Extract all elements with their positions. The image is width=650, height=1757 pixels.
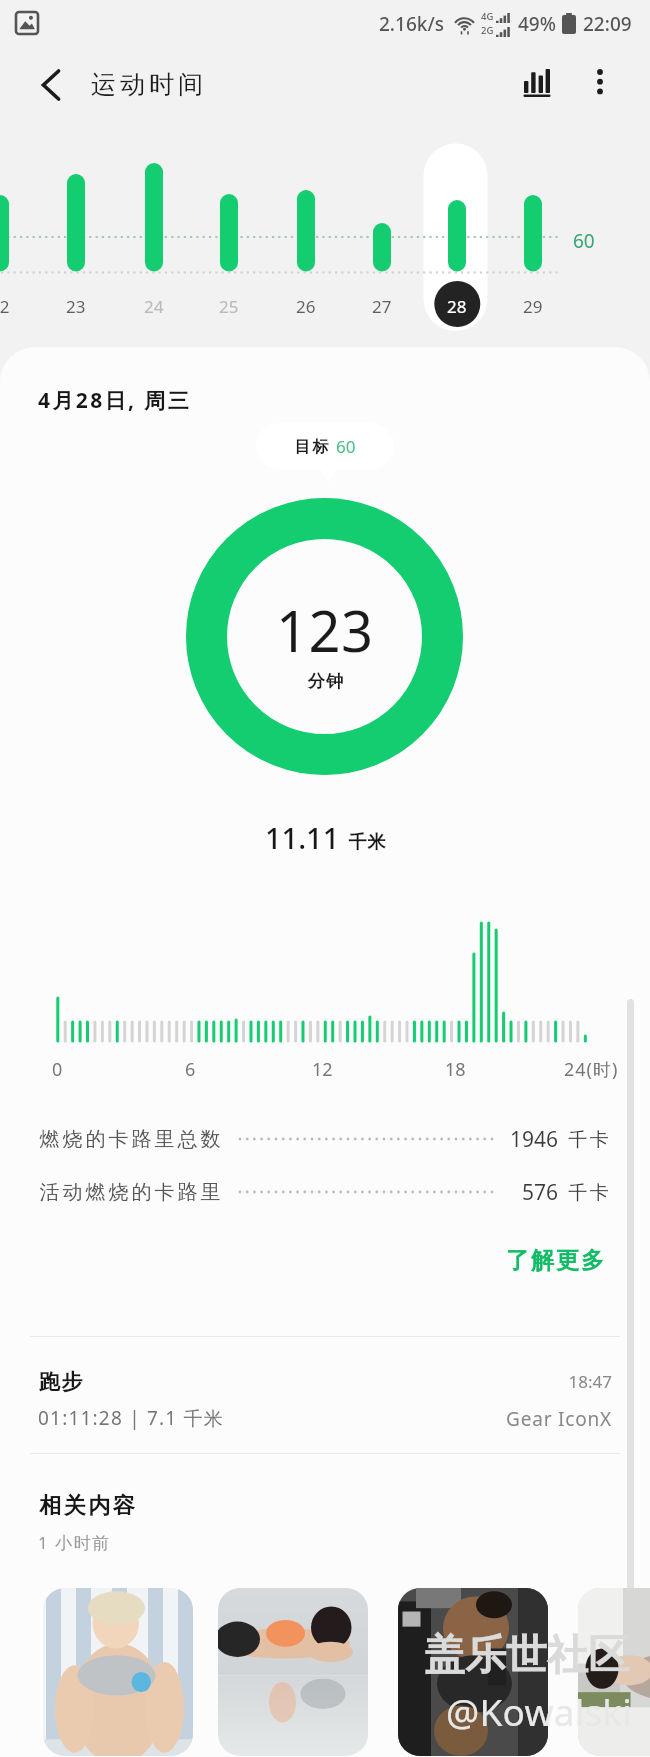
staticText: 千卡 bbox=[567, 1181, 610, 1205]
staticText: 01:11:28 | 7.1 千米 bbox=[38, 1405, 224, 1431]
staticText: 49% bbox=[518, 11, 556, 37]
staticText: 1946 bbox=[510, 1125, 559, 1154]
staticText: 燃烧的卡路里总数 bbox=[38, 1127, 222, 1152]
staticText: 576 bbox=[522, 1178, 559, 1207]
staticText: 目标 bbox=[294, 437, 329, 457]
staticText: 12 bbox=[312, 1057, 333, 1082]
button[interactable]: Statistics chart bbox=[510, 55, 565, 110]
button[interactable]: Back bbox=[24, 58, 78, 112]
button[interactable]: 了解更多 bbox=[489, 1234, 621, 1287]
staticText: 23 bbox=[66, 295, 86, 318]
staticText: 2.16k/s bbox=[379, 11, 444, 37]
staticText: 60 bbox=[336, 435, 356, 458]
staticText: 4G bbox=[481, 10, 494, 23]
staticText: 11.11 bbox=[265, 818, 340, 857]
staticText: 25 bbox=[219, 295, 239, 318]
staticText: 18 bbox=[445, 1057, 466, 1082]
staticText: 2G bbox=[481, 24, 494, 37]
button[interactable]: Related article image bbox=[578, 1588, 650, 1756]
staticText: @Kowalski bbox=[446, 1686, 633, 1736]
staticText: 24(时) bbox=[564, 1057, 619, 1082]
button[interactable]: More options bbox=[572, 55, 627, 110]
button[interactable]: 目标 bbox=[256, 423, 394, 469]
staticText: 60 bbox=[573, 228, 595, 254]
staticText: 活动燃烧的卡路里 bbox=[38, 1180, 222, 1205]
staticText: 6 bbox=[185, 1057, 196, 1082]
staticText: 千米 bbox=[348, 831, 386, 854]
staticText: 27 bbox=[372, 295, 392, 318]
staticText: 运动时间 bbox=[89, 69, 205, 100]
staticText: 了解更多 bbox=[505, 1246, 605, 1275]
button[interactable]: Related article image bbox=[43, 1588, 193, 1756]
staticText: 相关内容 bbox=[38, 1492, 136, 1520]
staticText: 跑步 bbox=[38, 1369, 83, 1395]
staticText: 29 bbox=[523, 295, 543, 318]
staticText: 盖乐世社区 bbox=[424, 1630, 629, 1682]
staticText: 0 bbox=[52, 1057, 63, 1082]
staticText: 分钟 bbox=[307, 671, 344, 692]
staticText: 22 bbox=[0, 295, 10, 318]
staticText: 18:47 bbox=[568, 1370, 612, 1393]
staticText: 26 bbox=[296, 295, 316, 318]
staticText: 28 bbox=[447, 295, 467, 318]
staticText: 1 小时前 bbox=[38, 1531, 111, 1554]
button[interactable]: Related article image bbox=[218, 1588, 368, 1756]
staticText: 22:09 bbox=[583, 11, 632, 37]
staticText: Gear IconX bbox=[506, 1406, 612, 1432]
button[interactable]: 跑步 bbox=[0, 1350, 650, 1450]
staticText: 24 bbox=[144, 295, 164, 318]
staticText: 4月28日, 周三 bbox=[38, 386, 192, 415]
button[interactable]: Related article image bbox=[398, 1588, 548, 1756]
staticText: 123 bbox=[276, 592, 374, 668]
staticText: 千卡 bbox=[567, 1128, 610, 1152]
